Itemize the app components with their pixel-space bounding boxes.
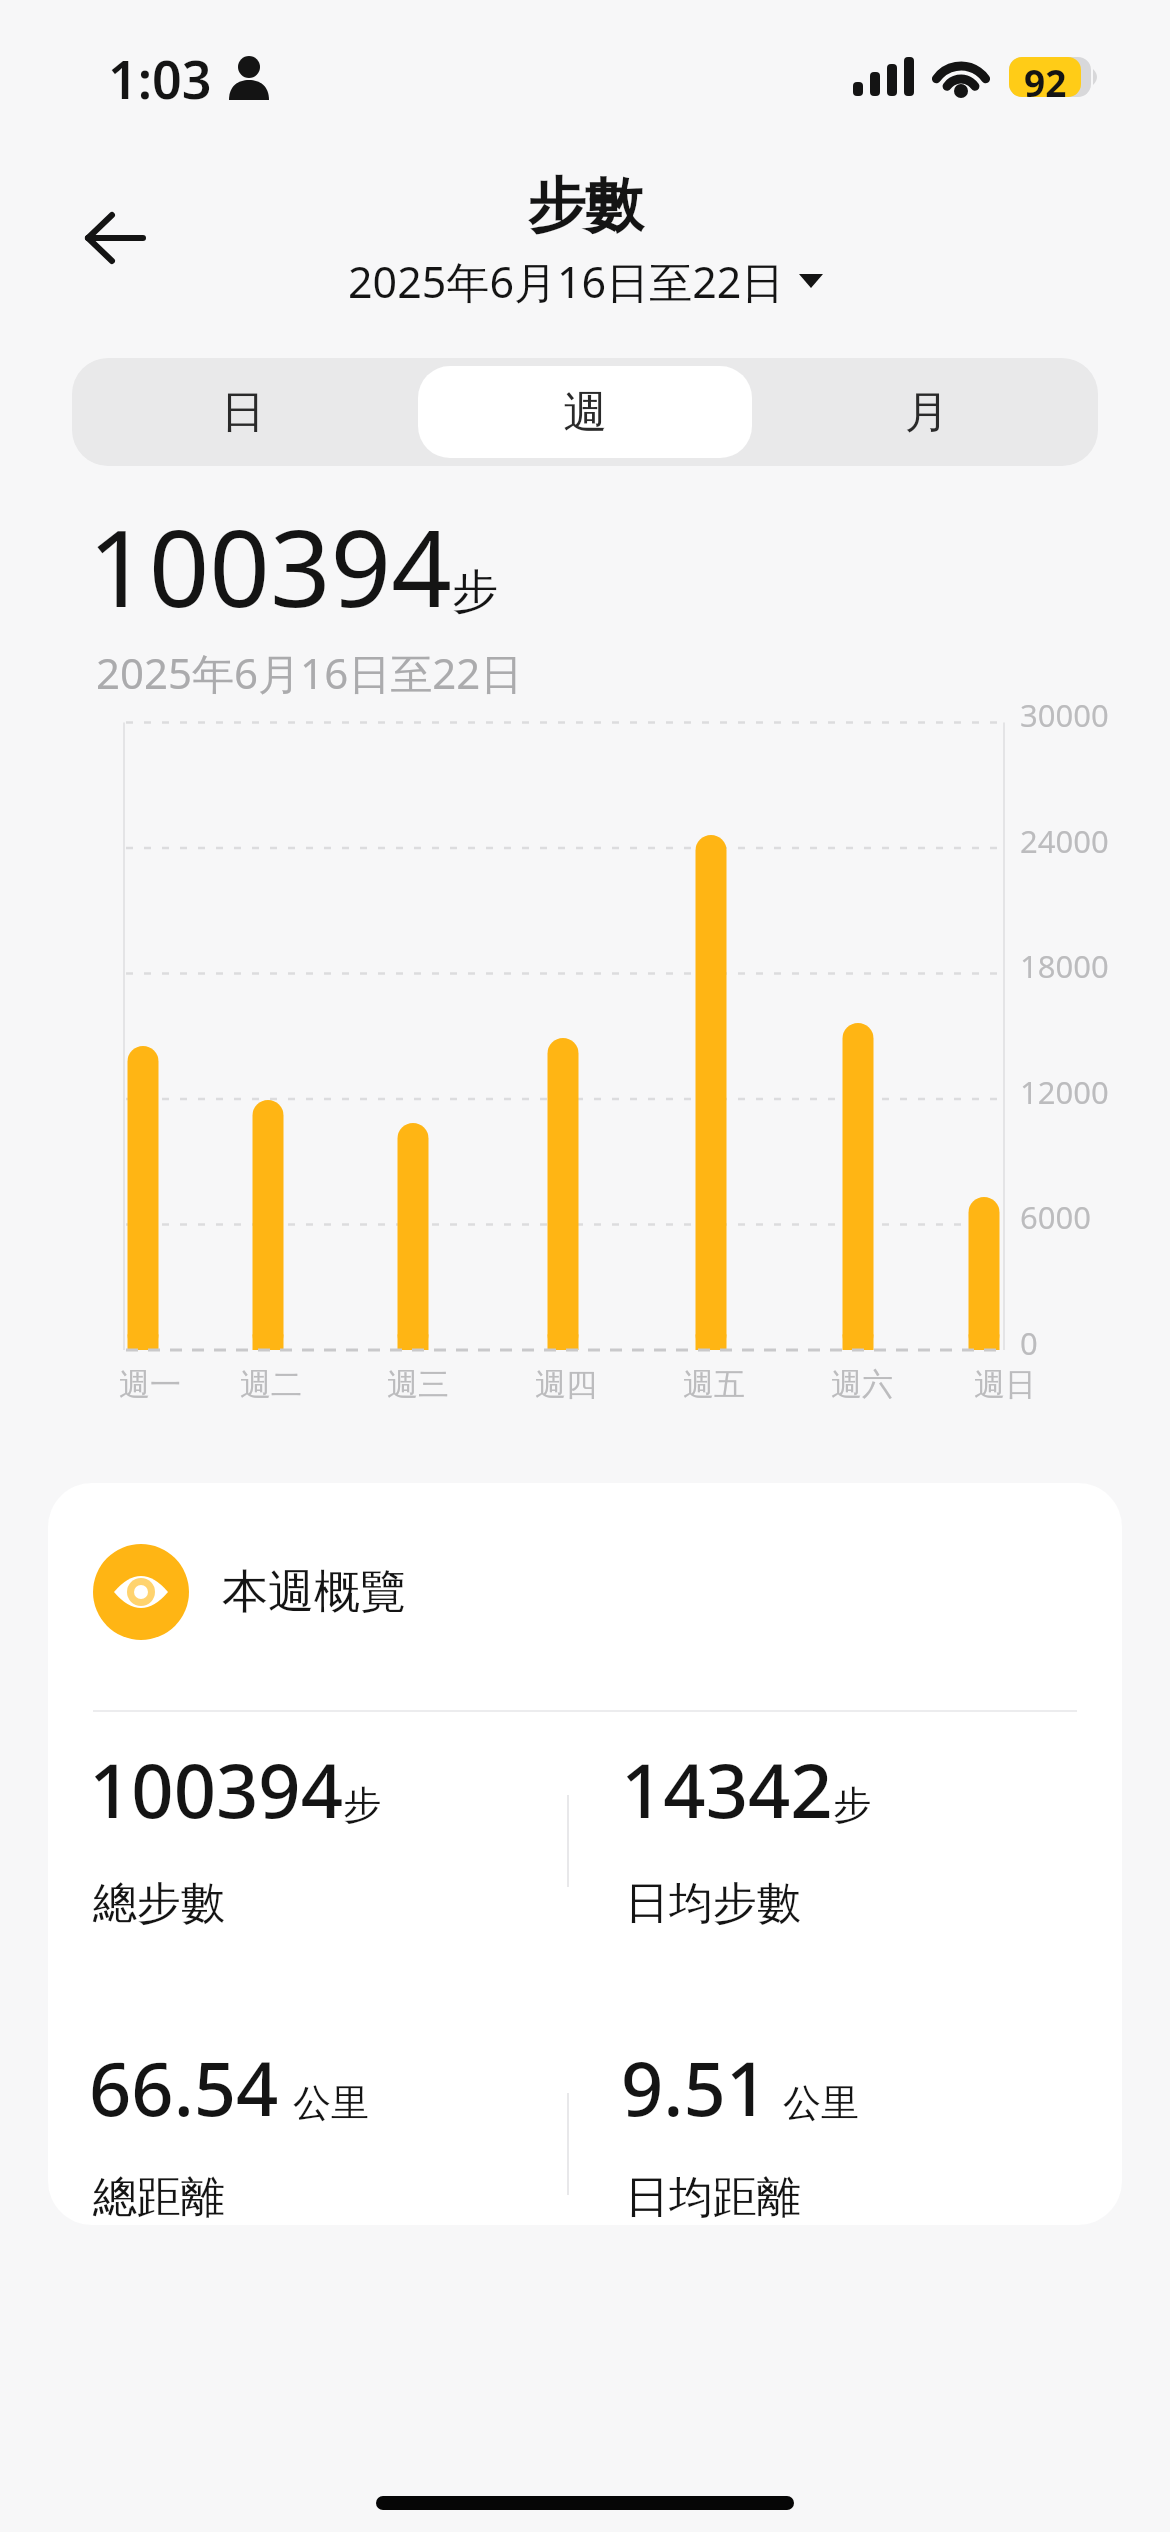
button[interactable]: 日 [72,358,414,466]
staticText: 步 [833,1781,871,1829]
staticText: 0 [1020,1322,1038,1364]
staticText: 週二 [240,1365,302,1404]
staticText: 日 [221,385,265,440]
staticText: 30000 [1020,694,1109,736]
button[interactable]: 2025年6月16日至22日 [0,250,1170,312]
button[interactable]: 月 [756,358,1098,466]
staticText: 月 [905,385,949,440]
staticText: 6000 [1020,1196,1091,1238]
button[interactable]: 週 [414,358,756,466]
staticText: 1:03 [108,43,212,107]
staticText: 92 [1024,57,1067,97]
staticText: 日均步數 [625,1876,801,1931]
staticText: 週日 [974,1365,1036,1404]
staticText: 66.54 [89,2037,279,2138]
staticText: 步 [343,1781,381,1829]
staticText: 24000 [1020,820,1109,862]
button[interactable] [70,200,160,276]
staticText: 週 [563,385,607,440]
staticText: 週一 [119,1365,181,1404]
staticText: 總距離 [93,2170,225,2225]
staticText: 100394 [89,1739,343,1840]
staticText: 公里 [293,2079,369,2127]
staticText: 9.51 [621,2037,769,2138]
staticText: 週六 [831,1365,893,1404]
staticText: 日均距離 [625,2170,801,2225]
staticText: 步 [452,563,498,621]
staticText: 週四 [535,1365,597,1404]
staticText: 14342 [621,1739,833,1840]
staticText: 週五 [683,1365,745,1404]
staticText: 公里 [783,2079,859,2127]
staticText: 2025年6月16日至22日 [348,252,785,311]
staticText: 本週概覽 [222,1563,406,1621]
staticText: 總步數 [93,1876,225,1931]
staticText: 2025年6月16日至22日 [96,644,523,701]
staticText: 100394 [88,494,452,638]
staticText: 步數 [527,169,643,242]
staticText: 12000 [1020,1071,1109,1113]
staticText: 18000 [1020,945,1109,987]
staticText: 週三 [387,1365,449,1404]
